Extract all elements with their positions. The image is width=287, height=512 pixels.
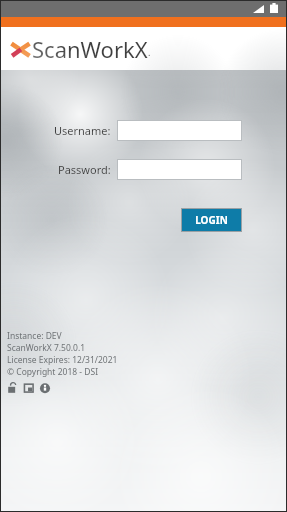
button[interactable] [117,159,242,180]
button[interactable]: Settings [23,382,35,394]
staticText: © Copyright 2018 - DSI [7,366,99,378]
staticText: License Expires: 12/31/2021 [7,354,118,366]
staticText: Instance: DEV [7,330,62,342]
staticText: Password: [58,162,111,177]
staticText: . [148,46,151,58]
staticText: LOGIN [195,213,228,227]
staticText: Username: [54,123,111,138]
button[interactable]: Unlock [7,382,19,394]
button[interactable] [117,120,242,141]
button[interactable]: Info [39,382,51,394]
staticText: ScanWorkX 7.50.0.1 [7,342,86,354]
button[interactable]: LOGIN [181,208,242,232]
staticText: ScanWorkX [32,34,148,64]
